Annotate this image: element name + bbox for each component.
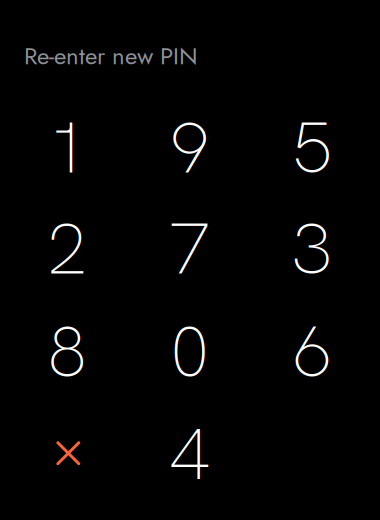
button[interactable]: 7	[128, 198, 250, 299]
staticText: 2	[47, 202, 87, 295]
staticText: 8	[47, 305, 87, 398]
staticText: 9	[169, 101, 209, 194]
button[interactable]: 8	[6, 301, 128, 402]
button[interactable]: 4	[128, 403, 250, 504]
staticText: 6	[292, 305, 332, 398]
button[interactable]: 3	[251, 198, 373, 299]
staticText: 7	[169, 202, 209, 295]
button[interactable]: 9	[128, 97, 250, 198]
staticText: 0	[169, 305, 209, 398]
button[interactable]: 6	[251, 301, 373, 402]
staticText: 5	[292, 101, 332, 194]
staticText: Re-enter new PIN	[24, 39, 198, 73]
button[interactable]: 1	[6, 97, 128, 198]
button[interactable]: 0	[128, 301, 250, 402]
button[interactable]: 2	[6, 198, 128, 299]
staticText: 4	[169, 407, 209, 501]
staticText: 3	[292, 202, 332, 295]
button[interactable]: 5	[251, 97, 373, 198]
button[interactable]: Delete	[7, 403, 129, 504]
staticText: 1	[47, 101, 87, 194]
